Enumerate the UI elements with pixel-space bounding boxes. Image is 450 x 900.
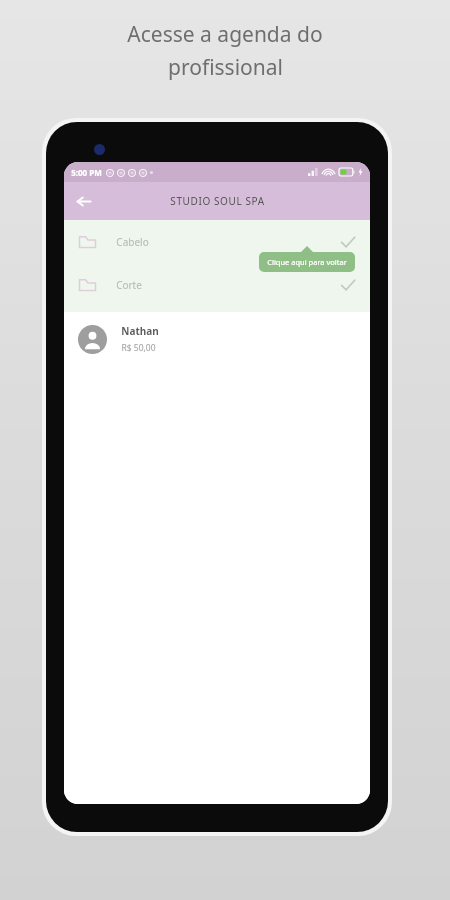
staticText: STUDIO SOUL SPA <box>170 194 265 208</box>
button[interactable]: Cabelo <box>64 220 370 263</box>
staticText: Cabelo <box>116 235 149 249</box>
button[interactable]: Nathan <box>64 312 370 366</box>
button[interactable]: Corte <box>64 263 370 306</box>
staticText: Clique aqui para voltar <box>267 257 347 267</box>
button[interactable]: Clique aqui para voltar <box>259 252 355 272</box>
staticText: Corte <box>116 278 142 292</box>
staticText: R$ 50,00 <box>121 342 156 354</box>
staticText: profissional <box>168 53 283 82</box>
button[interactable]: Back <box>64 182 102 220</box>
staticText: 5:00 PM <box>71 167 102 178</box>
staticText: Nathan <box>121 324 159 338</box>
staticText: Acesse a agenda do <box>127 20 323 49</box>
